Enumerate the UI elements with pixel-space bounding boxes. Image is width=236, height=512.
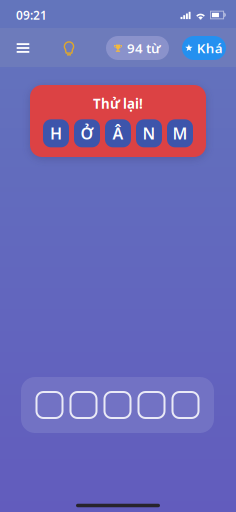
button[interactable]: M — [167, 119, 193, 147]
button[interactable]: Hint — [53, 32, 85, 64]
button[interactable]: 94 từ — [106, 36, 169, 60]
staticText: 94 từ — [127, 39, 161, 57]
staticText: Ở — [80, 123, 93, 144]
button[interactable]: Khá — [182, 36, 226, 60]
staticText: Thử lại! — [93, 95, 143, 112]
staticText: Â — [112, 123, 123, 144]
staticText: Khá — [197, 39, 223, 57]
staticText: M — [172, 123, 187, 144]
staticText: N — [142, 123, 155, 144]
button[interactable]: Ở — [74, 119, 100, 147]
button[interactable]: H — [43, 119, 69, 147]
button[interactable]: N — [136, 119, 162, 147]
button[interactable]: Â — [105, 119, 131, 147]
staticText: H — [50, 123, 62, 144]
button[interactable]: Menu — [7, 32, 39, 64]
staticText: 09:21 — [16, 7, 47, 23]
